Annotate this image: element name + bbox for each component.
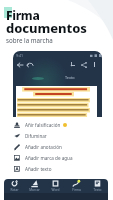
staticText: Firma [6,7,40,23]
button[interactable]: Marcar [24,179,45,193]
button[interactable]: More options [90,60,99,69]
button[interactable]: Texto [87,179,108,193]
button[interactable]: Rotar [4,179,24,193]
button[interactable]: Añir falsificación [9,119,102,130]
staticText: Difuminar [25,133,47,139]
button[interactable]: Share [79,60,88,69]
staticText: sobre la marcha [6,36,53,44]
button[interactable]: Difuminar [9,130,102,141]
button[interactable]: Añadir texto [9,163,102,174]
staticText: Texto [93,188,102,192]
button[interactable]: Añadir anotación [9,141,102,152]
staticText: Texto [65,75,75,80]
staticText: Word [51,188,60,192]
staticText: documentos [6,19,87,37]
staticText: Añadir marca de agua [25,155,73,161]
button[interactable]: Crop [68,60,77,69]
staticText: 9:41 [16,53,24,58]
staticText: Firma [72,188,81,192]
staticText: Rotar [10,188,19,192]
staticText: Añadir texto [25,166,52,172]
staticText: Añadir anotación [25,144,62,150]
staticText: Marcar [29,188,40,192]
button[interactable]: Añadir marca de agua [9,152,102,163]
button[interactable]: Back [15,60,24,69]
button[interactable]: Firma [66,179,87,193]
button[interactable]: Word [45,179,66,193]
button[interactable]: Undo [25,60,34,69]
staticText: Añir falsificación [25,122,61,128]
